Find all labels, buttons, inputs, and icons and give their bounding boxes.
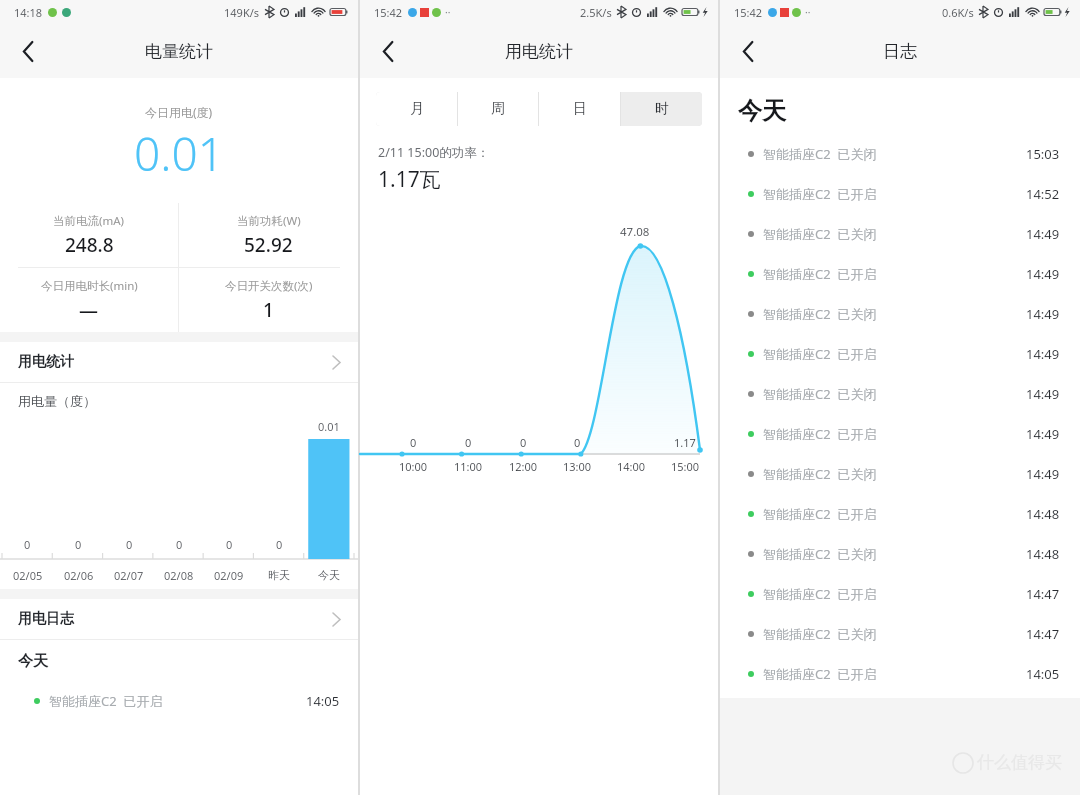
staticText: 用电统计 — [505, 41, 573, 62]
button[interactable]: 用电统计 — [0, 342, 358, 382]
staticText: 智能插座C2 已开启 — [763, 265, 877, 283]
staticText: 14:05 — [1026, 665, 1060, 683]
staticText: 0 — [465, 435, 472, 450]
staticText: 14:49 — [1026, 465, 1060, 483]
staticText: 0 — [126, 537, 133, 552]
staticText: 当前电流(mA) — [53, 213, 125, 229]
staticText: 时 — [655, 100, 669, 118]
staticText: 智能插座C2 已关闭 — [763, 385, 877, 403]
button[interactable]: 时 — [621, 92, 702, 126]
staticText: 智能插座C2 已开启 — [763, 665, 877, 683]
staticText: 0 — [176, 537, 183, 552]
staticText: 13:00 — [563, 459, 592, 474]
button[interactable]: 智能插座C2 已关闭 — [720, 294, 1080, 334]
staticText: 14:48 — [1026, 545, 1060, 563]
staticText: 0 — [574, 435, 581, 450]
staticText: 智能插座C2 已关闭 — [763, 545, 877, 563]
button[interactable]: Back — [0, 24, 56, 78]
staticText: 0 — [24, 537, 31, 552]
staticText: — — [79, 297, 99, 323]
button[interactable]: 智能插座C2 已关闭 — [720, 534, 1080, 574]
button[interactable]: 月 — [376, 92, 457, 126]
staticText: 什么值得买 — [977, 752, 1062, 773]
staticText: 14:49 — [1026, 225, 1060, 243]
button[interactable]: 智能插座C2 已开启 — [0, 681, 358, 721]
staticText: 0.6K/s — [942, 5, 974, 20]
staticText: 15:00 — [671, 459, 700, 474]
staticText: 周 — [491, 100, 505, 118]
staticText: 1.17瓦 — [378, 165, 441, 194]
button[interactable]: 智能插座C2 已开启 — [720, 414, 1080, 454]
staticText: 14:05 — [306, 692, 340, 710]
staticText: 2/11 15:00的功率： — [378, 144, 490, 161]
button[interactable]: 智能插座C2 已关闭 — [720, 454, 1080, 494]
staticText: 14:49 — [1026, 345, 1060, 363]
button[interactable]: 当前电流(mA) — [0, 203, 178, 267]
staticText: 智能插座C2 已开启 — [763, 505, 877, 523]
staticText: 智能插座C2 已关闭 — [763, 225, 877, 243]
staticText: 15:42 — [734, 5, 763, 20]
staticText: 14:49 — [1026, 385, 1060, 403]
staticText: 0 — [520, 435, 527, 450]
staticText: 11:00 — [454, 459, 483, 474]
button[interactable]: Back — [360, 24, 416, 78]
staticText: 智能插座C2 已关闭 — [763, 625, 877, 643]
staticText: 智能插座C2 已开启 — [763, 425, 877, 443]
button[interactable]: 智能插座C2 已关闭 — [720, 374, 1080, 414]
staticText: 14:49 — [1026, 305, 1060, 323]
button[interactable]: 智能插座C2 已开启 — [720, 574, 1080, 614]
staticText: 15:42 — [374, 5, 403, 20]
staticText: 今天 — [318, 568, 340, 582]
button[interactable]: Back — [720, 24, 776, 78]
staticText: 02/05 — [13, 568, 43, 583]
button[interactable]: 智能插座C2 已关闭 — [720, 134, 1080, 174]
staticText: 电量统计 — [145, 41, 213, 62]
staticText: 智能插座C2 已开启 — [763, 345, 877, 363]
button[interactable]: 用电日志 — [0, 599, 358, 639]
staticText: 14:52 — [1026, 185, 1060, 203]
button[interactable]: 智能插座C2 已关闭 — [720, 214, 1080, 254]
button[interactable]: 日 — [539, 92, 620, 126]
staticText: 0 — [75, 537, 82, 552]
staticText: 0 — [226, 537, 233, 552]
staticText: 0.01 — [318, 419, 340, 434]
button[interactable]: 当前功耗(W) — [179, 203, 358, 267]
staticText: 14:00 — [617, 459, 646, 474]
staticText: 日志 — [883, 41, 917, 62]
staticText: 用电统计 — [18, 353, 74, 371]
staticText: 52.92 — [244, 232, 293, 258]
button[interactable]: 智能插座C2 已开启 — [720, 654, 1080, 694]
staticText: 248.8 — [65, 232, 114, 258]
staticText: 昨天 — [268, 568, 290, 582]
staticText: 月 — [410, 100, 424, 118]
staticText: 今日开关次数(次) — [225, 278, 313, 294]
button[interactable]: 周 — [458, 92, 538, 126]
staticText: 今天 — [18, 652, 48, 671]
staticText: 智能插座C2 已开启 — [49, 692, 163, 710]
staticText: 12:00 — [509, 459, 538, 474]
button[interactable]: 智能插座C2 已开启 — [720, 334, 1080, 374]
staticText: 14:47 — [1026, 625, 1060, 643]
button[interactable]: 今日开关次数(次) — [179, 268, 358, 332]
button[interactable]: 智能插座C2 已开启 — [720, 174, 1080, 214]
button[interactable]: 智能插座C2 已关闭 — [720, 614, 1080, 654]
staticText: 14:49 — [1026, 265, 1060, 283]
staticText: 10:00 — [399, 459, 428, 474]
button[interactable]: 智能插座C2 已开启 — [720, 254, 1080, 294]
staticText: 47.08 — [620, 224, 650, 240]
staticText: 14:47 — [1026, 585, 1060, 603]
staticText: 当前功耗(W) — [237, 213, 301, 229]
button[interactable]: 今日用电时长(min) — [0, 268, 178, 332]
staticText: 14:18 — [14, 5, 43, 20]
staticText: 2.5K/s — [580, 5, 612, 20]
staticText: 今日用电时长(min) — [41, 278, 138, 294]
staticText: 今天 — [738, 96, 786, 126]
staticText: 15:03 — [1026, 145, 1060, 163]
button[interactable]: 智能插座C2 已开启 — [720, 494, 1080, 534]
staticText: 0 — [276, 537, 283, 552]
staticText: ·· — [445, 5, 451, 19]
staticText: 智能插座C2 已关闭 — [763, 305, 877, 323]
staticText: 智能插座C2 已关闭 — [763, 465, 877, 483]
staticText: 1.17 — [674, 435, 696, 450]
staticText: 用电日志 — [18, 610, 74, 628]
